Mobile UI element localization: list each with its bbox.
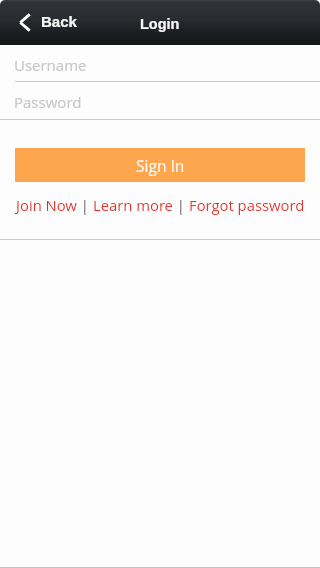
staticText: Sign In — [136, 155, 185, 176]
staticText: | — [173, 195, 189, 215]
staticText: Password — [14, 92, 82, 112]
other: Back — [19, 13, 31, 32]
button[interactable]: Password — [0, 82, 320, 120]
staticText: Username — [14, 55, 87, 75]
button[interactable]: Username — [0, 45, 320, 82]
staticText: Back — [41, 13, 77, 30]
staticText: Login — [140, 16, 180, 32]
button[interactable]: Forgot password — [189, 195, 305, 215]
button[interactable]: Back — [0, 0, 87, 45]
staticText: | — [77, 195, 93, 215]
button[interactable]: Join Now — [16, 195, 77, 215]
button[interactable]: Learn more — [93, 195, 173, 215]
button[interactable]: Sign In — [15, 148, 305, 182]
